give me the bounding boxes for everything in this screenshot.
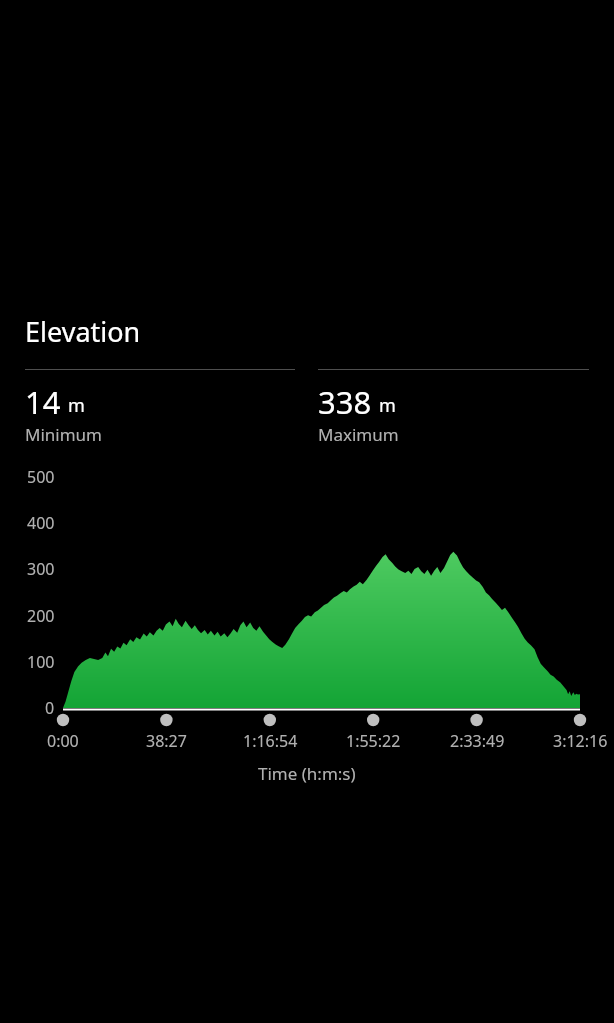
button[interactable]: 14	[25, 369, 295, 446]
button[interactable]: 338	[318, 369, 589, 446]
staticText: Time (h:m:s)	[258, 762, 356, 785]
staticText: 0	[45, 697, 55, 719]
staticText: 38:27	[146, 730, 187, 752]
staticText: 1:16:54	[243, 730, 298, 752]
staticText: m	[379, 393, 396, 418]
staticText: 2:33:49	[450, 730, 505, 752]
staticText: 14	[25, 381, 61, 423]
staticText: Maximum	[318, 423, 399, 446]
staticText: 3:12:16	[553, 730, 608, 752]
staticText: 0:00	[47, 730, 79, 752]
staticText: 338	[318, 381, 372, 423]
staticText: 200	[27, 605, 55, 627]
staticText: 400	[27, 512, 55, 534]
staticText: 100	[27, 651, 55, 673]
staticText: 500	[27, 466, 55, 488]
staticText: Minimum	[25, 423, 102, 446]
staticText: m	[68, 393, 85, 418]
staticText: 300	[27, 558, 55, 580]
staticText: Elevation	[25, 313, 141, 350]
staticText: 1:55:22	[346, 730, 401, 752]
